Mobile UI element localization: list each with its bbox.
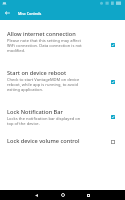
staticText: Lock device volume control [7, 137, 80, 145]
button[interactable]: Start on device reboot [0, 69, 125, 108]
staticText: Lock Notification Bar [7, 108, 63, 116]
button[interactable]: Home [56, 190, 70, 200]
button[interactable]: Back [29, 190, 43, 200]
staticText: Allow internet connection [7, 30, 76, 38]
button[interactable]: Enabled [106, 78, 119, 85]
staticText: Check to start VantageMDM on device rebo… [7, 77, 86, 92]
button[interactable]: Recent apps [81, 190, 95, 200]
staticText: Misc Controls [18, 11, 42, 16]
button[interactable]: Disabled [106, 138, 119, 145]
staticText: Start on device reboot [7, 69, 67, 77]
staticText: Please note that this setting may affect… [7, 38, 86, 53]
button[interactable]: Enabled [106, 113, 119, 120]
button[interactable]: Lock Notification Bar [0, 108, 125, 137]
button[interactable]: Lock device volume control [0, 137, 125, 157]
button[interactable]: Enabled [106, 41, 119, 48]
button[interactable]: Navigate up [0, 6, 18, 20]
staticText: Locks the notification bar displayed on … [7, 116, 86, 126]
button[interactable]: Allow internet connection [0, 30, 125, 69]
